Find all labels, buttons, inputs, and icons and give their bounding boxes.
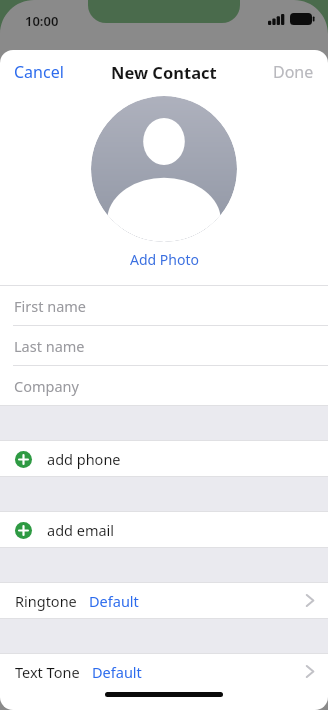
staticText: Ringtone [15,591,77,611]
staticText: Last name [14,336,85,356]
button[interactable]: First name [0,286,328,325]
staticText: Default [92,662,142,682]
staticText: Company [14,376,79,396]
staticText: New Contact [111,61,217,83]
button[interactable]: add email [0,512,328,547]
staticText: add phone [47,449,121,469]
staticText: Done [273,61,314,83]
button[interactable]: Contact photo [91,96,237,242]
staticText: First name [14,296,87,316]
staticText: Add Photo [130,250,199,269]
button[interactable]: add phone [0,441,328,476]
staticText: Default [89,591,139,611]
button[interactable]: Company [0,366,328,405]
button[interactable]: Ringtone [0,583,328,618]
staticText: 10:00 [25,12,59,30]
button[interactable]: Add Photo [122,248,207,271]
staticText: Text Tone [15,662,80,682]
button[interactable]: Done [263,55,324,89]
staticText: Cancel [14,61,64,83]
button[interactable]: Cancel [4,55,74,89]
button[interactable]: Last name [0,326,328,365]
button[interactable]: Text Tone [0,654,328,689]
staticText: add email [47,520,115,540]
